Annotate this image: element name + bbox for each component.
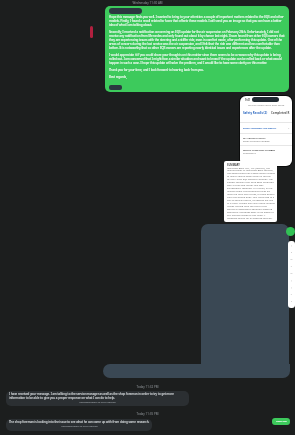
staticText: Safety Recalls (2) bbox=[243, 111, 268, 115]
staticText: Mercedes-Benz USA, LLC (MBUSA), the manu… bbox=[227, 166, 275, 220]
staticText: Recall Currently Pending bbox=[243, 140, 270, 143]
staticText: Wednesday 11:30 AM bbox=[0, 1, 295, 5]
staticText: The shop foreman is looking into the iss… bbox=[9, 420, 150, 424]
staticText: ^ bbox=[288, 127, 290, 130]
button[interactable]: Thank you bbox=[272, 418, 290, 425]
button[interactable] bbox=[103, 364, 290, 378]
staticText: Get your refresh result alerts below bbox=[240, 104, 292, 107]
staticText: MBUSA CAMPAIGN NUMBER bbox=[243, 149, 276, 152]
staticText: Best regards, bbox=[109, 75, 127, 79]
button[interactable]: Scroll to date bbox=[288, 241, 295, 308]
staticText: S bbox=[288, 300, 295, 303]
staticText: SUMMARY bbox=[227, 163, 240, 166]
staticText: Completed R bbox=[271, 111, 290, 115]
staticText: I would appreciate it if you could share… bbox=[109, 53, 287, 65]
button[interactable]: The shop foreman is looking into the iss… bbox=[6, 419, 152, 431]
staticText: A bbox=[288, 265, 295, 268]
staticText: 9:41 bbox=[245, 98, 250, 101]
staticText: MY VEHICLE STATUS bbox=[243, 137, 266, 140]
staticText: I have received your message. I am talki… bbox=[9, 392, 186, 400]
staticText: A bbox=[288, 293, 295, 296]
staticText: Secondly, I received a notification conc… bbox=[109, 30, 287, 50]
staticText: Today 11:32 PM bbox=[0, 385, 295, 389]
staticText: J bbox=[288, 286, 295, 289]
staticText: Hope this message finds you well. I want… bbox=[109, 15, 287, 27]
staticText: Thank you for your time, and I look forw… bbox=[109, 68, 204, 72]
staticText: 2024090017 bbox=[243, 152, 257, 155]
button[interactable]: 9:41 bbox=[239, 95, 293, 167]
staticText: Mercedes-Benz of Fort Mitchell bbox=[9, 400, 186, 403]
staticText: M bbox=[288, 272, 295, 275]
staticText: M bbox=[288, 258, 295, 261]
staticText: J bbox=[288, 279, 295, 282]
staticText: Thank you bbox=[276, 420, 287, 423]
staticText: Mercedes-Benz of Fort Mitchell bbox=[9, 424, 150, 427]
button[interactable]: Hope this message finds you well. I want… bbox=[105, 6, 289, 92]
staticText: Today 11:35 PM bbox=[0, 412, 295, 416]
staticText: F bbox=[288, 251, 295, 254]
button[interactable]: I have received your message. I am talki… bbox=[6, 391, 189, 406]
button[interactable]: SUMMARY bbox=[224, 161, 277, 222]
staticText: Recall Campaign: 2024090017 bbox=[243, 127, 277, 130]
staticText: J bbox=[288, 244, 295, 247]
